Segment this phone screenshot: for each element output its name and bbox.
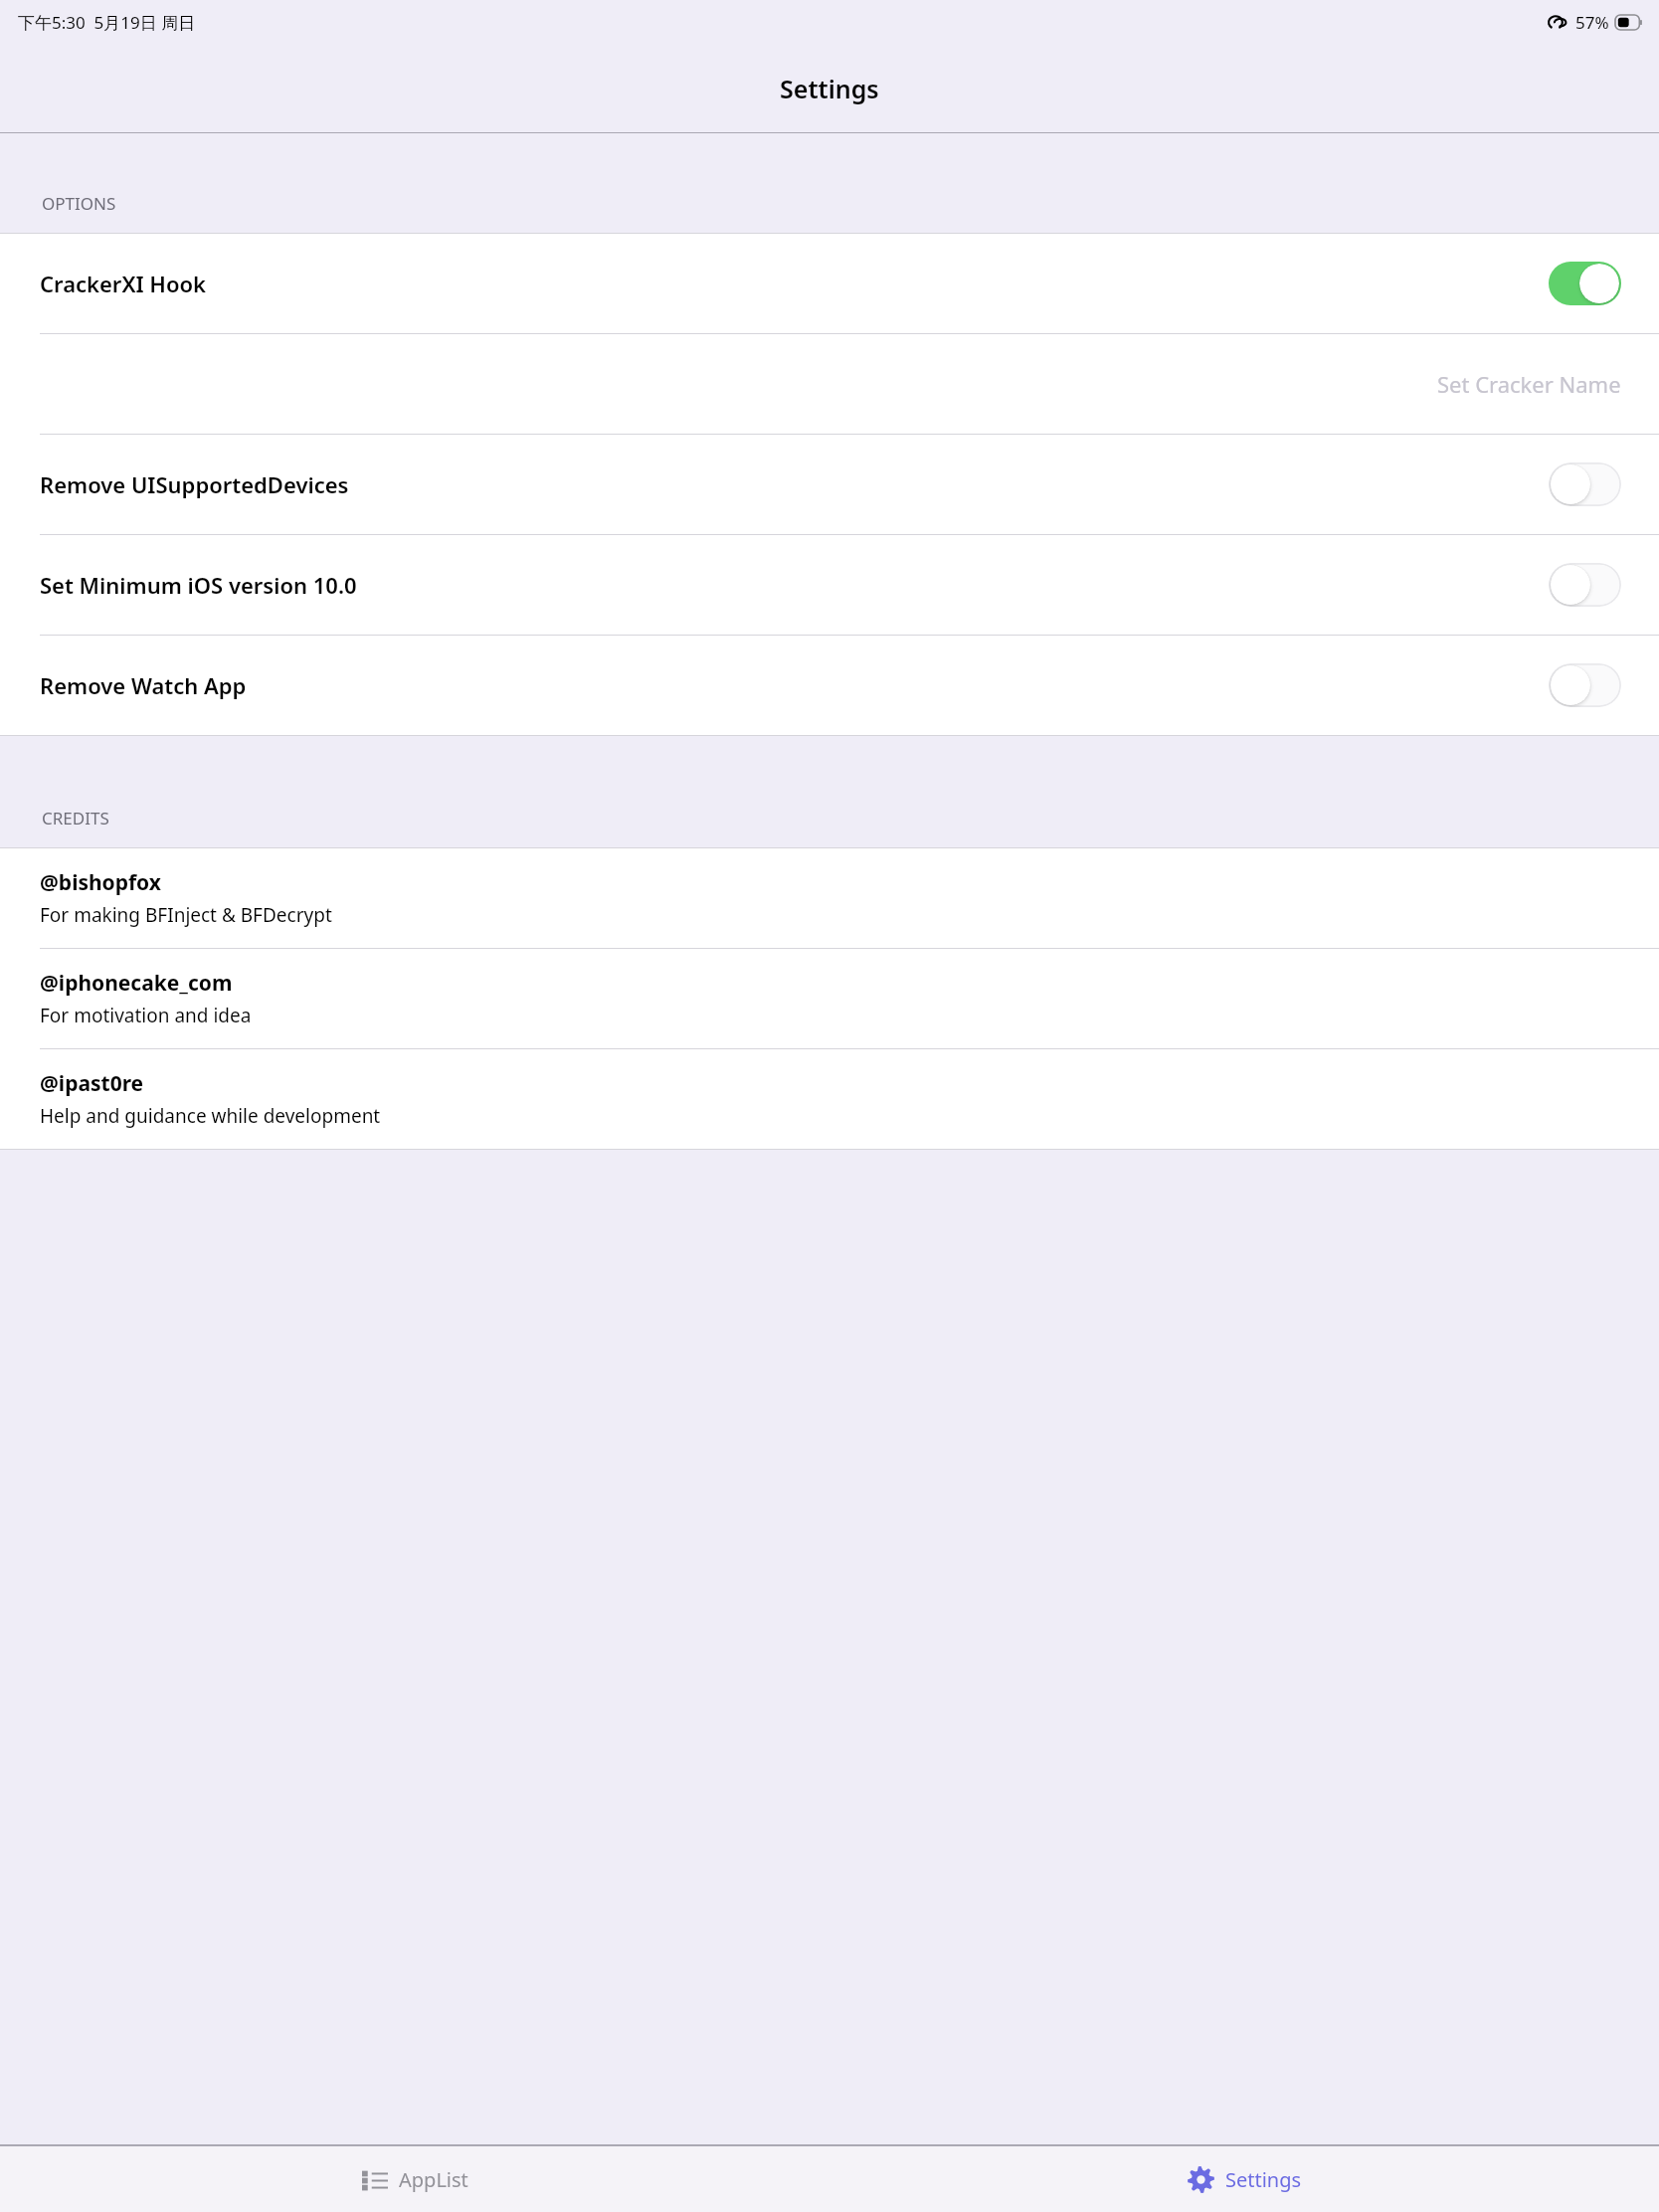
staticText: @iphonecake_com	[40, 969, 233, 998]
staticText: Settings	[780, 72, 879, 105]
staticText: Help and guidance while development	[40, 1103, 381, 1129]
staticText: Remove Watch App	[40, 670, 1549, 700]
staticText: 57%	[1575, 11, 1609, 34]
staticText: Settings	[1225, 2166, 1302, 2193]
button[interactable]: @ipast0re	[0, 1049, 1659, 1149]
button[interactable]: Off	[1549, 462, 1621, 506]
staticText: @ipast0re	[40, 1069, 144, 1098]
staticText: Set Cracker Name	[1437, 369, 1621, 399]
staticText: 下午5:30 5月19日 周日	[18, 11, 196, 34]
button[interactable]: CrackerXI Hook	[0, 234, 1659, 333]
button[interactable]: On	[1549, 262, 1621, 305]
staticText: @bishopfox	[40, 868, 161, 897]
button[interactable]: Off	[1549, 663, 1621, 707]
button[interactable]: Set Cracker Name	[0, 334, 1659, 434]
button[interactable]: Settings	[829, 2146, 1659, 2212]
button[interactable]: AppList	[0, 2146, 829, 2212]
staticText: Remove UISupportedDevices	[40, 469, 1549, 499]
button[interactable]: Set Minimum iOS version 10.0	[0, 535, 1659, 635]
button[interactable]: Remove UISupportedDevices	[0, 435, 1659, 534]
staticText: For making BFInject & BFDecrypt	[40, 902, 332, 928]
staticText: AppList	[399, 2166, 468, 2193]
staticText: For motivation and idea	[40, 1003, 252, 1028]
button[interactable]: @iphonecake_com	[0, 949, 1659, 1048]
staticText: CrackerXI Hook	[40, 269, 1549, 298]
staticText: CREDITS	[42, 807, 109, 829]
staticText: Set Minimum iOS version 10.0	[40, 570, 1549, 600]
button[interactable]: Remove Watch App	[0, 636, 1659, 735]
button[interactable]: @bishopfox	[0, 848, 1659, 948]
staticText: OPTIONS	[42, 192, 116, 215]
button[interactable]: Off	[1549, 563, 1621, 607]
